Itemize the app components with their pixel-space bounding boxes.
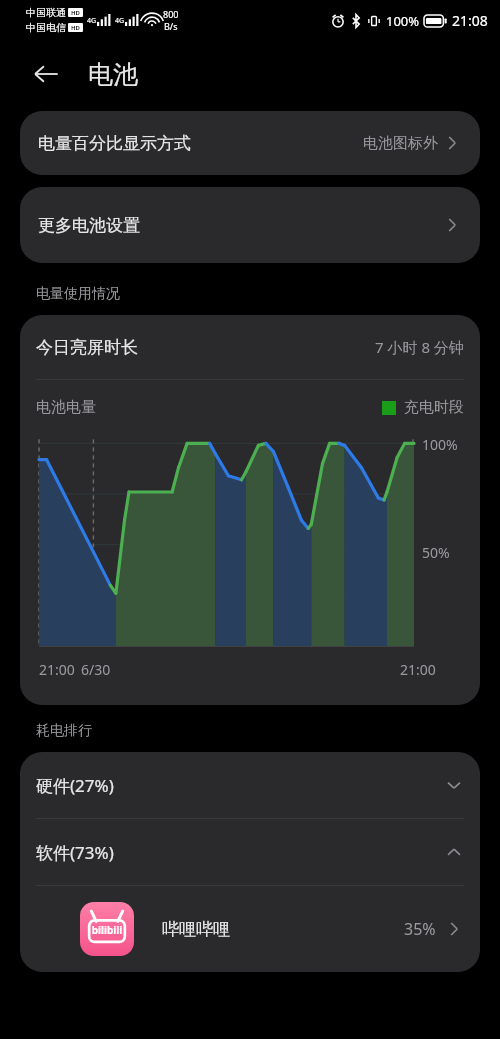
staticText: 6/30 [81, 660, 111, 679]
staticText: 电池电量 [36, 398, 96, 417]
staticText: 4G [87, 16, 97, 26]
staticText: 100% [422, 435, 458, 454]
staticText: 800 [163, 8, 179, 20]
staticText: 100% [386, 12, 420, 30]
staticText: 电量使用情况 [36, 285, 120, 303]
staticText: 21:00 [400, 660, 436, 679]
staticText: 硬件(27%) [36, 774, 114, 797]
staticText: 耗电排行 [36, 722, 92, 740]
staticText: 充电时段 [404, 398, 464, 417]
staticText: 7 小时 8 分钟 [375, 337, 464, 357]
button[interactable]: 更多电池设置 [20, 187, 480, 263]
staticText: 电量百分比显示方式 [38, 133, 191, 154]
button[interactable]: bilibili [20, 886, 480, 972]
staticText: 今日亮屏时长 [36, 337, 138, 358]
button[interactable]: Back [24, 52, 68, 96]
staticText: 21:00 [39, 660, 75, 679]
button[interactable]: 电量百分比显示方式 [20, 111, 480, 175]
staticText: HD [71, 24, 80, 32]
staticText: HD [71, 9, 80, 17]
staticText: 更多电池设置 [38, 215, 140, 236]
staticText: 4G [115, 16, 125, 26]
staticText: B/s [164, 20, 178, 32]
staticText: 软件(73%) [36, 841, 114, 864]
staticText: 中国电信 [26, 21, 66, 34]
button[interactable]: 硬件(27%) [20, 752, 480, 818]
button[interactable]: 软件(73%) [20, 819, 480, 885]
staticText: 50% [422, 543, 450, 562]
staticText: 35% [404, 918, 436, 940]
staticText: 哔哩哔哩 [162, 919, 230, 940]
staticText: bilibili [80, 923, 134, 937]
button[interactable]: 今日亮屏时长 [20, 315, 480, 379]
staticText: 电池图标外 [363, 134, 438, 153]
staticText: 21:08 [452, 11, 488, 30]
staticText: 电池 [88, 59, 138, 90]
staticText: 中国联通 [26, 6, 66, 19]
